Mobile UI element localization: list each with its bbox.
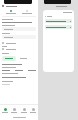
button[interactable]: [2, 48, 36, 50]
button[interactable]: Tab 2: [10, 107, 18, 114]
button[interactable]: Tab 4: [29, 107, 37, 114]
button[interactable]: [45, 19, 72, 23]
button[interactable]: Tab 1: [1, 107, 9, 114]
button[interactable]: Personal tab: [4, 10, 18, 14]
button[interactable]: [2, 27, 36, 31]
button[interactable]: [45, 25, 72, 29]
button[interactable]: Business tab: [20, 10, 34, 14]
button[interactable]: [2, 42, 36, 44]
button[interactable]: [2, 35, 36, 39]
button[interactable]: Back: [2, 5, 36, 7]
button[interactable]: [2, 56, 16, 61]
button[interactable]: Tab 3: [20, 107, 28, 114]
